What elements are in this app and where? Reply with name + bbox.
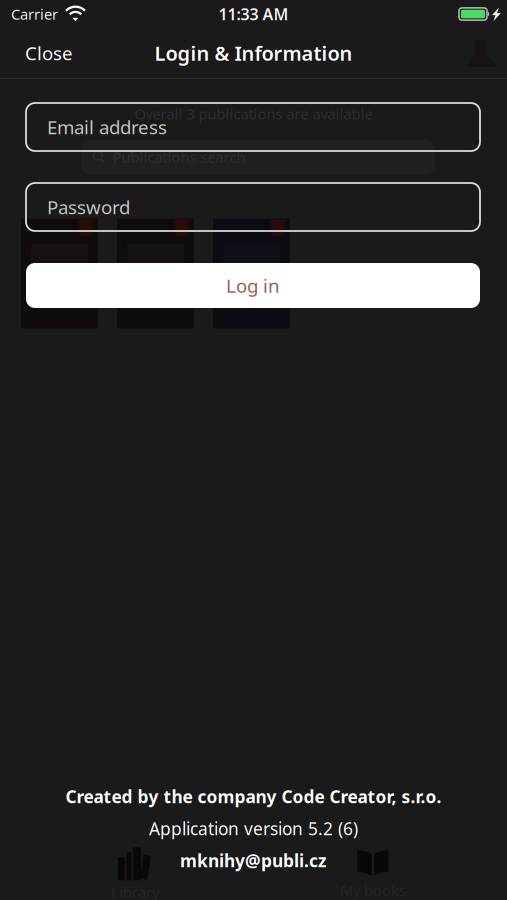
button[interactable]: My books	[280, 849, 466, 900]
staticText: Library	[111, 882, 159, 900]
button[interactable]: Library	[42, 849, 228, 900]
staticText: Close	[25, 41, 73, 65]
staticText: Application version 5.2 (6)	[149, 817, 358, 840]
staticText: mknihy@publi.cz	[180, 849, 327, 872]
staticText: Email address	[47, 115, 167, 139]
staticText: Carrier	[11, 4, 58, 24]
staticText: Password	[47, 195, 130, 219]
staticText: Created by the company Code Creator, s.r…	[65, 785, 441, 808]
staticText: Log in	[226, 273, 280, 298]
staticText: My books	[340, 880, 406, 900]
staticText: 11:33 AM	[218, 3, 288, 25]
button[interactable]: Close	[0, 28, 87, 78]
staticText: Publications search	[112, 147, 245, 167]
staticText: Overall 3 publications are available	[134, 104, 372, 123]
button[interactable]: Log in	[26, 263, 480, 308]
staticText: Login & Information	[154, 40, 352, 66]
